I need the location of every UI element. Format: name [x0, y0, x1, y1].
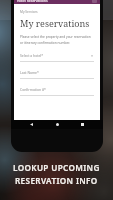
- button[interactable]: Back: [27, 120, 36, 129]
- staticText: My reservations: [20, 17, 90, 29]
- staticText: or itinerary confirmation number.: [20, 41, 70, 45]
- button[interactable]: Account: [92, 0, 97, 3]
- staticText: Hotel Reservations: [17, 0, 48, 3]
- button[interactable]: Last Name*: [20, 70, 94, 79]
- button[interactable]: Select a hotel*: [20, 53, 94, 62]
- staticText: LOOKUP UPCOMING: [13, 162, 100, 173]
- staticText: Confirmation #*: [20, 87, 46, 92]
- staticText: Please select the property and your rese…: [20, 35, 91, 39]
- button[interactable]: Home: [53, 120, 62, 129]
- staticText: My Services: [20, 10, 38, 14]
- button[interactable]: Confirmation #*: [20, 87, 94, 96]
- staticText: RESERVATION INFO: [15, 175, 98, 186]
- staticText: Select a hotel*: [20, 53, 44, 58]
- staticText: Last Name*: [20, 70, 39, 75]
- button[interactable]: Recent apps: [78, 120, 87, 129]
